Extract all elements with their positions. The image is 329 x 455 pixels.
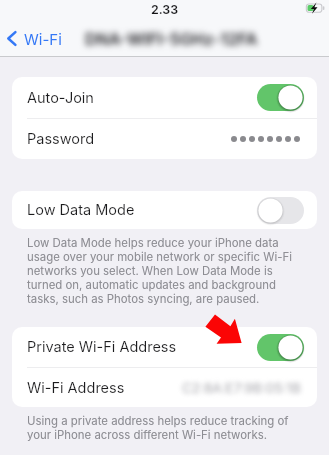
button[interactable]: Private Wi-Fi Address (12, 327, 317, 367)
staticText: Wi-Fi (24, 30, 62, 48)
staticText: Auto-Join (27, 89, 94, 107)
staticText: Low Data Mode (27, 201, 135, 219)
staticText: DNA-WIFI-5GHz-12FA (85, 29, 258, 48)
staticText: Password (27, 130, 95, 148)
staticText: C2:8A:E7:9B:05:1B (182, 380, 301, 396)
button[interactable]: Private Wi-Fi Address toggle (257, 334, 304, 361)
staticText: Low Data Mode helps reduce your iPhone d… (27, 236, 299, 306)
button[interactable]: Wi-Fi Address (12, 368, 317, 407)
button[interactable]: Low Data Mode toggle (257, 197, 304, 224)
staticText: 2.33 (151, 2, 179, 17)
button[interactable]: Auto-Join (12, 77, 317, 118)
button[interactable]: Wi-Fi (7, 29, 62, 48)
staticText: Private Wi-Fi Address (27, 338, 177, 356)
button[interactable]: Low Data Mode (12, 191, 317, 229)
staticText: Using a private address helps reduce tra… (27, 414, 299, 442)
staticText: Wi-Fi Address (27, 379, 125, 397)
button[interactable]: Password (12, 119, 317, 159)
button[interactable]: Auto-Join toggle (257, 84, 304, 111)
